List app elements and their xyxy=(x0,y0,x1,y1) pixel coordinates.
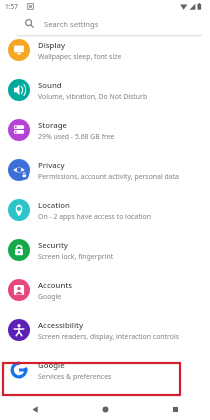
staticText: Sound xyxy=(38,80,62,91)
button[interactable]: Display xyxy=(0,30,210,70)
button[interactable]: Recents xyxy=(140,398,210,420)
staticText: Accessibility xyxy=(38,320,84,331)
button[interactable]: Privacy xyxy=(0,150,210,190)
button[interactable]: Back xyxy=(0,398,70,420)
staticText: Search settings xyxy=(44,19,99,29)
button[interactable]: Location xyxy=(0,190,210,230)
button[interactable]: Storage xyxy=(0,110,210,150)
staticText: Wallpaper, sleep, font size xyxy=(38,52,122,61)
staticText: Accounts xyxy=(38,280,73,291)
button[interactable]: System xyxy=(0,390,210,420)
button[interactable]: Security xyxy=(0,230,210,270)
button[interactable]: Search settings xyxy=(16,12,202,35)
staticText: Location xyxy=(38,200,70,211)
staticText: Languages, gestures, time, backup xyxy=(38,412,151,420)
staticText: Permissions, account activity, personal … xyxy=(38,172,179,181)
button[interactable]: Accessibility xyxy=(0,310,210,350)
button[interactable]: Google xyxy=(0,350,210,390)
staticText: Display xyxy=(38,40,66,51)
staticText: 1:57 xyxy=(5,2,18,11)
staticText: Volume, vibration, Do Not Disturb xyxy=(38,92,148,101)
staticText: Privacy xyxy=(38,160,65,171)
staticText: Storage xyxy=(38,120,67,131)
staticText: Google xyxy=(38,292,62,301)
staticText: Screen lock, fingerprint xyxy=(38,252,114,261)
button[interactable]: Sound xyxy=(0,70,210,110)
staticText: Google xyxy=(38,360,65,371)
staticText: On - 2 apps have access to location xyxy=(38,212,151,221)
staticText: Services & preferences xyxy=(38,372,112,381)
button[interactable]: Home xyxy=(70,398,140,420)
staticText: Screen readers, display, interaction con… xyxy=(38,332,180,341)
button[interactable]: Accounts xyxy=(0,270,210,310)
staticText: 29% used - 5.68 GB free xyxy=(38,132,115,141)
staticText: Security xyxy=(38,240,68,251)
